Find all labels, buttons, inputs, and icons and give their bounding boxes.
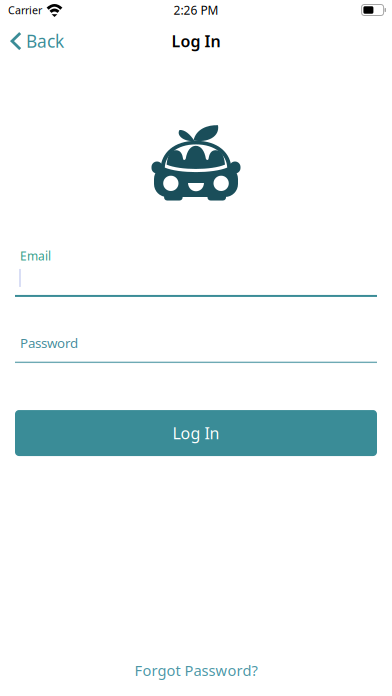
- button[interactable]: Log In: [15, 410, 377, 456]
- staticText: Password: [20, 334, 78, 352]
- staticText: Back: [26, 29, 64, 52]
- button[interactable]: Forgot Password?: [122, 652, 269, 688]
- staticText: 2:26 PM: [173, 2, 218, 18]
- staticText: Email: [20, 248, 51, 264]
- staticText: Forgot Password?: [134, 660, 257, 680]
- staticText: Log In: [172, 422, 219, 444]
- staticText: Carrier: [8, 3, 42, 17]
- button[interactable]: Back: [0, 23, 72, 58]
- staticText: Log In: [171, 30, 220, 52]
